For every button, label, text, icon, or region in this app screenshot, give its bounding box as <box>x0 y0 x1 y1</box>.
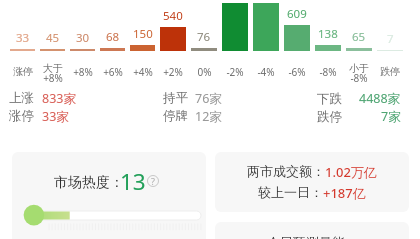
staticText: 33家 <box>42 108 69 125</box>
staticText: +2% <box>163 65 183 79</box>
staticText: 609 <box>287 6 307 22</box>
staticText: 833家 <box>42 90 76 107</box>
staticText: -4% <box>257 65 275 79</box>
staticText: 较上一日： <box>258 184 323 200</box>
staticText: 跌停 <box>317 109 342 125</box>
staticText: 两市成交额： <box>247 163 325 179</box>
staticText: 涨停 <box>13 65 33 78</box>
staticText: +8% <box>73 65 93 79</box>
button[interactable]: 热度说明 <box>147 175 159 187</box>
staticText: 76家 <box>195 90 222 107</box>
staticText: +6% <box>103 65 123 79</box>
staticText: 上涨 <box>9 90 34 106</box>
staticText: -8% <box>350 71 368 85</box>
staticText: 540 <box>163 8 183 24</box>
staticText: -2% <box>226 65 244 79</box>
staticText: ? <box>151 175 155 187</box>
staticText: 1.02万亿 <box>325 163 377 181</box>
staticText: 30 <box>76 30 90 46</box>
button[interactable]: 两市成交额： <box>215 152 409 212</box>
staticText: 68 <box>106 29 120 45</box>
staticText: 市场热度： <box>54 174 124 192</box>
staticText: 33 <box>16 30 30 46</box>
staticText: 7 <box>387 31 394 47</box>
staticText: 涨停 <box>9 108 34 124</box>
staticText: 65 <box>352 29 366 45</box>
staticText: 0% <box>197 65 212 79</box>
button[interactable] <box>12 152 206 239</box>
staticText: 持平 <box>163 90 188 106</box>
staticText: 13 <box>120 166 146 197</box>
staticText: 12家 <box>195 108 222 125</box>
staticText: 小于 <box>349 62 369 75</box>
staticText: +4% <box>133 65 153 79</box>
staticText: 76 <box>197 29 211 45</box>
staticText: 150 <box>133 26 153 42</box>
staticText: +8% <box>43 71 63 85</box>
staticText: 45 <box>46 30 60 46</box>
staticText: -8% <box>319 65 337 79</box>
staticText: 大于 <box>43 62 63 75</box>
staticText: 跌停 <box>380 65 400 78</box>
button[interactable]: 今日预测量能： <box>215 222 409 239</box>
staticText: +187亿 <box>323 184 366 202</box>
staticText: 4488家 <box>359 90 401 107</box>
staticText: -6% <box>288 65 306 79</box>
staticText: 7家 <box>381 108 401 125</box>
staticText: 下跌 <box>317 91 342 107</box>
staticText: 138 <box>318 26 338 42</box>
staticText: 今日预测量能： <box>267 234 358 239</box>
staticText: 停牌 <box>163 108 188 124</box>
